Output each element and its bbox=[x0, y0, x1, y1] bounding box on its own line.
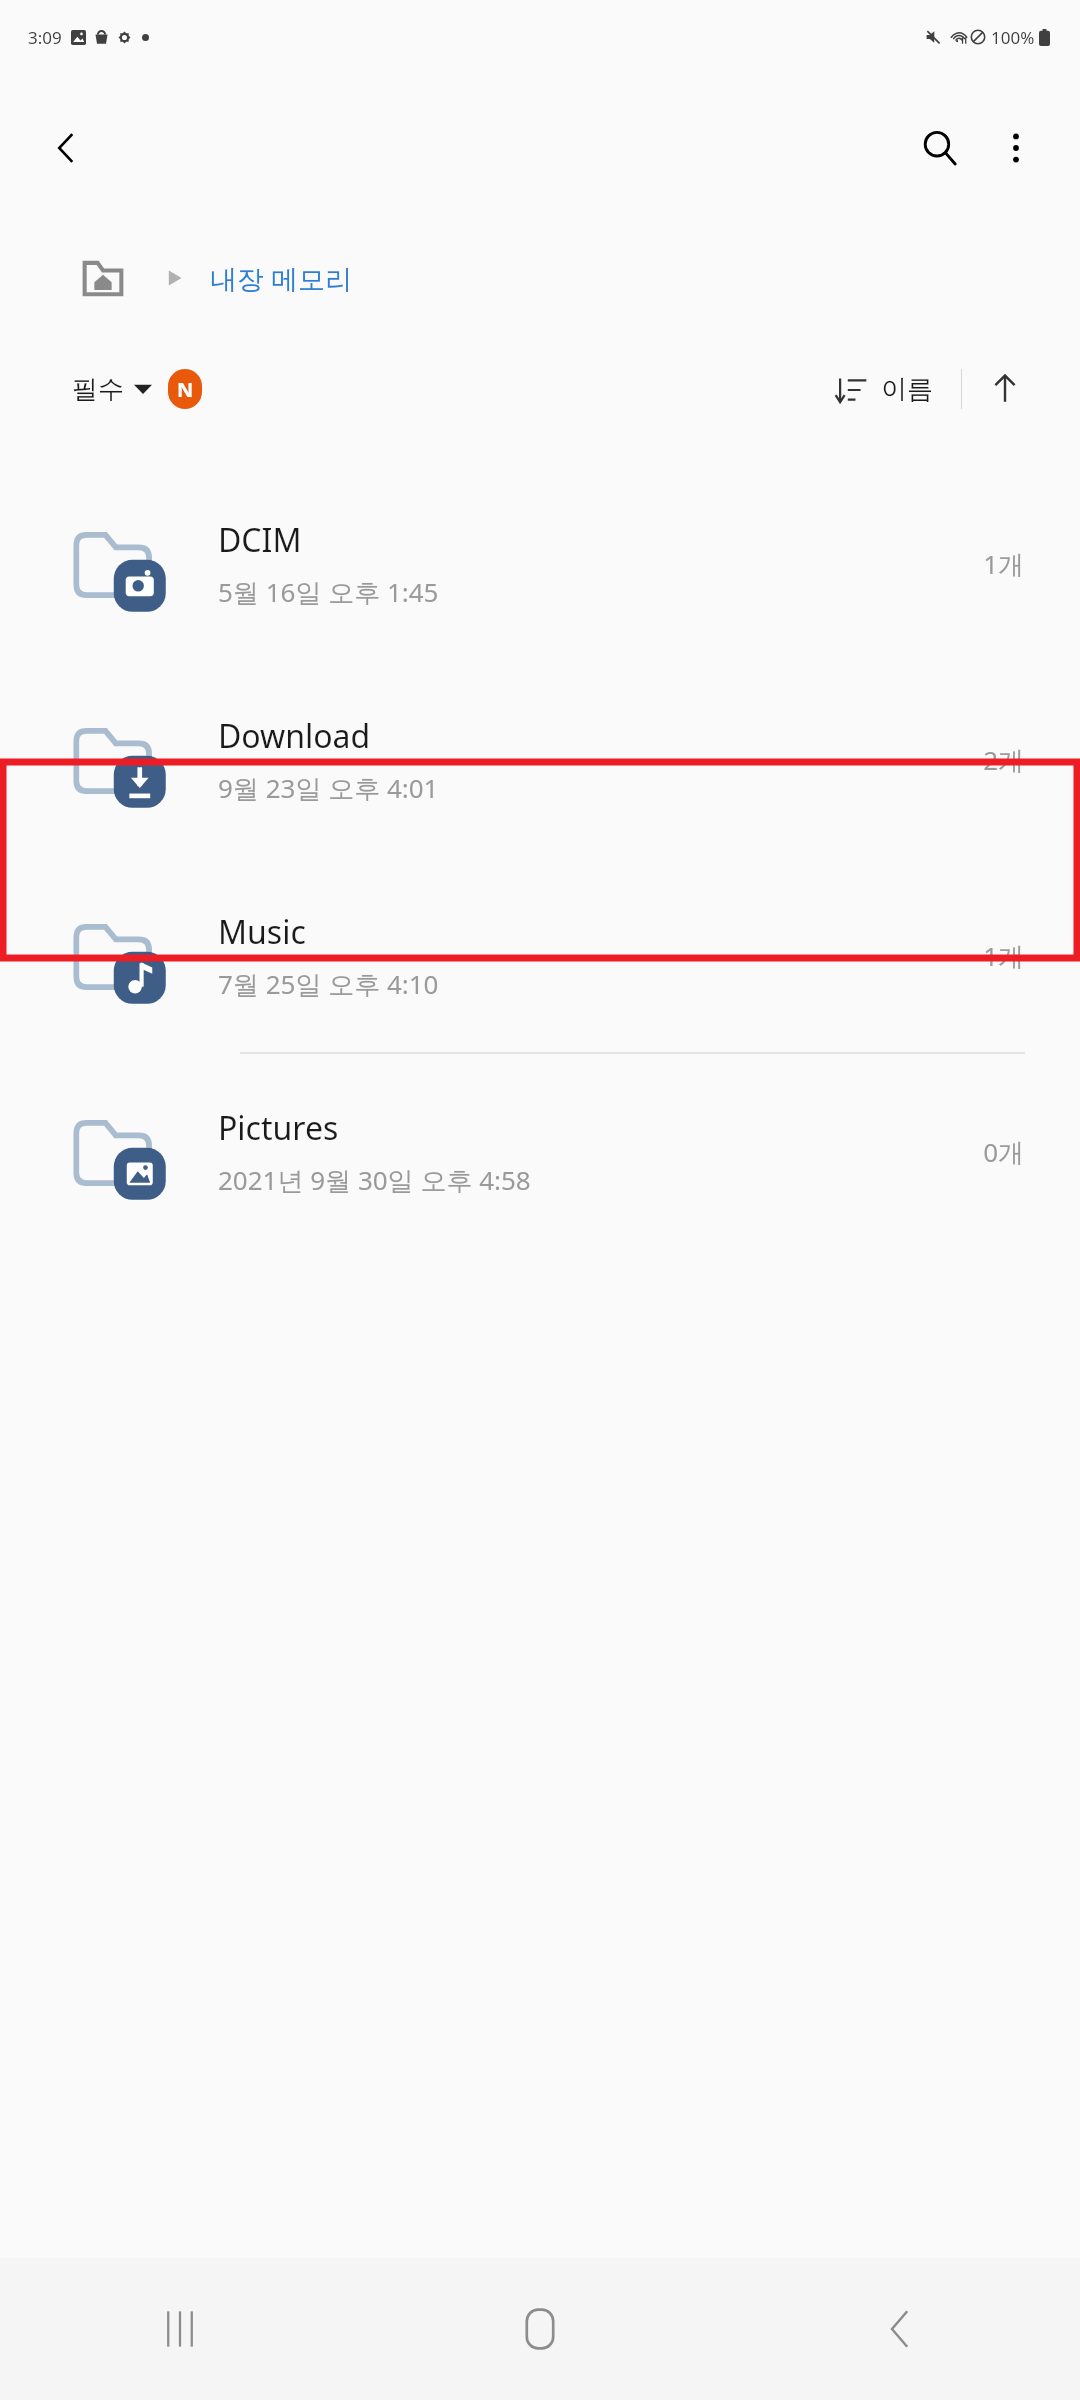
button[interactable]: Back bbox=[36, 118, 96, 178]
staticText: 7월 25일 오후 4:10 bbox=[218, 966, 439, 1002]
staticText: 필수 bbox=[72, 373, 124, 406]
staticText: 2개 bbox=[983, 742, 1024, 778]
button[interactable]: Search bbox=[902, 110, 978, 186]
button[interactable]: Music bbox=[0, 858, 1080, 1054]
button[interactable]: Home bbox=[72, 247, 134, 309]
staticText: 1개 bbox=[983, 938, 1024, 974]
staticText: 2021년 9월 30일 오후 4:58 bbox=[218, 1162, 531, 1198]
staticText: Download bbox=[218, 714, 371, 758]
button[interactable]: Sort ascending bbox=[976, 360, 1034, 418]
button[interactable]: 이름 bbox=[829, 365, 939, 414]
staticText: 3:09 bbox=[28, 26, 62, 49]
button[interactable]: Download bbox=[0, 662, 1080, 858]
button[interactable]: 필수 bbox=[66, 363, 208, 415]
staticText: 5월 16일 오후 1:45 bbox=[218, 574, 439, 610]
staticText: 이름 bbox=[881, 373, 933, 406]
staticText: Music bbox=[218, 910, 306, 954]
button[interactable]: Recent apps bbox=[0, 2258, 360, 2400]
button[interactable]: Home bbox=[360, 2258, 720, 2400]
button[interactable]: 내장 메모리 bbox=[210, 260, 353, 297]
button[interactable]: Back bbox=[720, 2258, 1080, 2400]
staticText: 0개 bbox=[983, 1134, 1024, 1170]
button[interactable]: DCIM bbox=[0, 466, 1080, 662]
staticText: 9월 23일 오후 4:01 bbox=[218, 770, 439, 806]
staticText: 내장 메모리 bbox=[210, 260, 353, 297]
staticText: 100% bbox=[991, 26, 1035, 49]
button[interactable]: More options bbox=[978, 110, 1054, 186]
staticText: Pictures bbox=[218, 1106, 339, 1150]
staticText: 1개 bbox=[983, 546, 1024, 582]
button[interactable]: Pictures bbox=[0, 1054, 1080, 1250]
staticText: DCIM bbox=[218, 518, 302, 562]
staticText: N bbox=[177, 376, 194, 403]
